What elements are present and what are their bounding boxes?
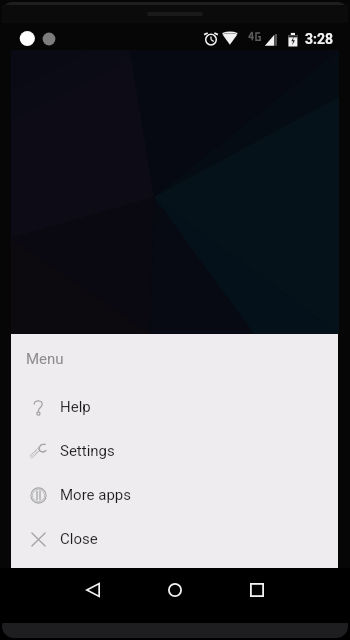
staticText: More apps	[60, 486, 132, 504]
staticText: Close	[60, 530, 98, 548]
button[interactable]: Recents	[237, 570, 277, 610]
button[interactable]: More apps	[11, 473, 338, 517]
staticText: 3:28	[305, 31, 334, 47]
staticText: Menu	[26, 350, 64, 368]
button[interactable]: Close	[11, 517, 338, 561]
button[interactable]: Home	[155, 570, 195, 610]
staticText: Settings	[60, 442, 115, 460]
button[interactable]: Back	[73, 570, 113, 610]
button[interactable]: Settings	[11, 429, 338, 473]
staticText: Help	[60, 398, 91, 416]
button[interactable]: Help	[11, 385, 338, 429]
